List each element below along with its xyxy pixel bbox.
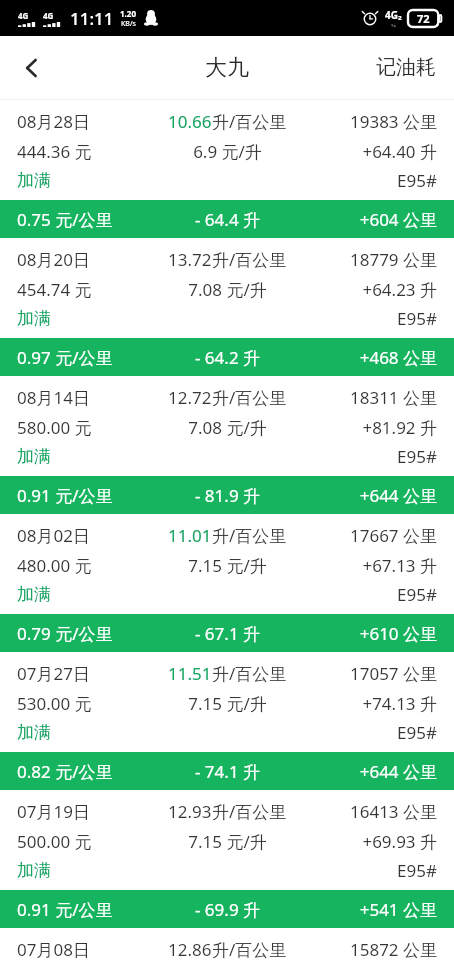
staticText: - 81.9 升 — [151, 484, 304, 507]
staticText: 72 — [417, 11, 430, 26]
staticText: +64.23 升 — [304, 278, 437, 301]
staticText: 4G — [43, 10, 54, 21]
staticText: 12.86 — [168, 938, 212, 960]
staticText: +64.40 升 — [304, 140, 437, 163]
staticText: 16413 公里 — [304, 800, 437, 823]
staticText: E95# — [304, 859, 437, 882]
staticText: 17057 公里 — [304, 662, 437, 685]
staticText: E95# — [304, 445, 437, 468]
staticText: 530.00 元 — [17, 692, 151, 715]
staticText: 1.20 — [120, 8, 136, 19]
staticText: 加满 — [17, 308, 151, 329]
staticText: E95# — [304, 307, 437, 330]
staticText: - 74.1 升 — [151, 760, 304, 783]
staticText: 480.00 元 — [17, 554, 151, 577]
staticText: - 67.1 升 — [151, 622, 304, 645]
staticText: 10.66 — [168, 110, 212, 133]
staticText: +69.93 升 — [304, 830, 437, 853]
staticText: 4G₂ — [385, 8, 402, 22]
staticText: 0.91 元/公里 — [17, 484, 151, 507]
staticText: 11.01 — [168, 524, 212, 547]
staticText: +74.13 升 — [304, 692, 437, 715]
staticText: KB/s — [121, 19, 136, 29]
staticText: 升/百公里 — [212, 662, 287, 685]
staticText: 07月19日 — [17, 800, 151, 823]
staticText: +541 公里 — [304, 898, 437, 921]
staticText: 11.51 — [168, 662, 212, 685]
staticText: 7.15 元/升 — [151, 554, 304, 577]
staticText: 580.00 元 — [17, 416, 151, 439]
staticText: - 64.2 升 — [151, 346, 304, 369]
staticText: 升/百公里 — [212, 248, 287, 271]
staticText: 7.15 元/升 — [151, 692, 304, 715]
staticText: 0.82 元/公里 — [17, 760, 151, 783]
staticText: 08月28日 — [17, 110, 151, 133]
staticText: 11:11 — [70, 7, 114, 30]
staticText: E95# — [304, 583, 437, 606]
staticText: +67.13 升 — [304, 554, 437, 577]
staticText: 12.93 — [168, 800, 212, 823]
staticText: 17667 公里 — [304, 524, 437, 547]
staticText: 0.79 元/公里 — [17, 622, 151, 645]
staticText: +468 公里 — [304, 346, 437, 369]
staticText: 454.74 元 — [17, 278, 151, 301]
staticText: 18311 公里 — [304, 386, 437, 409]
staticText: 7.08 元/升 — [151, 278, 304, 301]
staticText: 升/百公里 — [212, 524, 287, 547]
staticText: 500.00 元 — [17, 830, 151, 853]
staticText: +644 公里 — [304, 760, 437, 783]
staticText: 加满 — [17, 446, 151, 467]
button[interactable]: 08月28日 — [0, 100, 454, 238]
staticText: 升/百公里 — [212, 800, 287, 823]
staticText: 6.9 元/升 — [151, 140, 304, 163]
staticText: 记油耗 — [376, 55, 436, 80]
staticText: 升/百公里 — [212, 938, 287, 960]
staticText: 0.91 元/公里 — [17, 898, 151, 921]
staticText: 7.08 元/升 — [151, 416, 304, 439]
staticText: - 69.9 升 — [151, 898, 304, 921]
staticText: E95# — [304, 169, 437, 192]
button[interactable]: 07月19日 — [0, 790, 454, 928]
staticText: 加满 — [17, 170, 151, 191]
button[interactable]: 08月02日 — [0, 514, 454, 652]
staticText: ▾▴ — [391, 22, 397, 28]
staticText: 升/百公里 — [212, 110, 287, 133]
staticText: 444.36 元 — [17, 140, 151, 163]
button[interactable]: Back — [0, 36, 64, 99]
staticText: 19383 公里 — [304, 110, 437, 133]
staticText: 大九 — [205, 54, 249, 82]
button[interactable]: 08月20日 — [0, 238, 454, 376]
staticText: 18779 公里 — [304, 248, 437, 271]
staticText: 12.72 — [168, 386, 212, 409]
staticText: 07月08日 — [17, 938, 151, 960]
staticText: 07月27日 — [17, 662, 151, 685]
button[interactable]: 记油耗 — [358, 36, 454, 99]
staticText: 08月14日 — [17, 386, 151, 409]
staticText: +644 公里 — [304, 484, 437, 507]
staticText: 15872 公里 — [304, 938, 437, 960]
button[interactable]: 07月27日 — [0, 652, 454, 790]
staticText: +604 公里 — [304, 208, 437, 231]
staticText: 4G — [18, 10, 29, 21]
staticText: +610 公里 — [304, 622, 437, 645]
button[interactable]: 08月14日 — [0, 376, 454, 514]
staticText: 13.72 — [168, 248, 212, 271]
staticText: 08月20日 — [17, 248, 151, 271]
staticText: 加满 — [17, 584, 151, 605]
staticText: 加满 — [17, 722, 151, 743]
staticText: 08月02日 — [17, 524, 151, 547]
staticText: 0.97 元/公里 — [17, 346, 151, 369]
staticText: 升/百公里 — [212, 386, 287, 409]
staticText: E95# — [304, 721, 437, 744]
staticText: 加满 — [17, 860, 151, 881]
staticText: 7.15 元/升 — [151, 830, 304, 853]
staticText: +81.92 升 — [304, 416, 437, 439]
staticText: - 64.4 升 — [151, 208, 304, 231]
button[interactable]: 07月08日 — [0, 928, 454, 960]
staticText: 0.75 元/公里 — [17, 208, 151, 231]
